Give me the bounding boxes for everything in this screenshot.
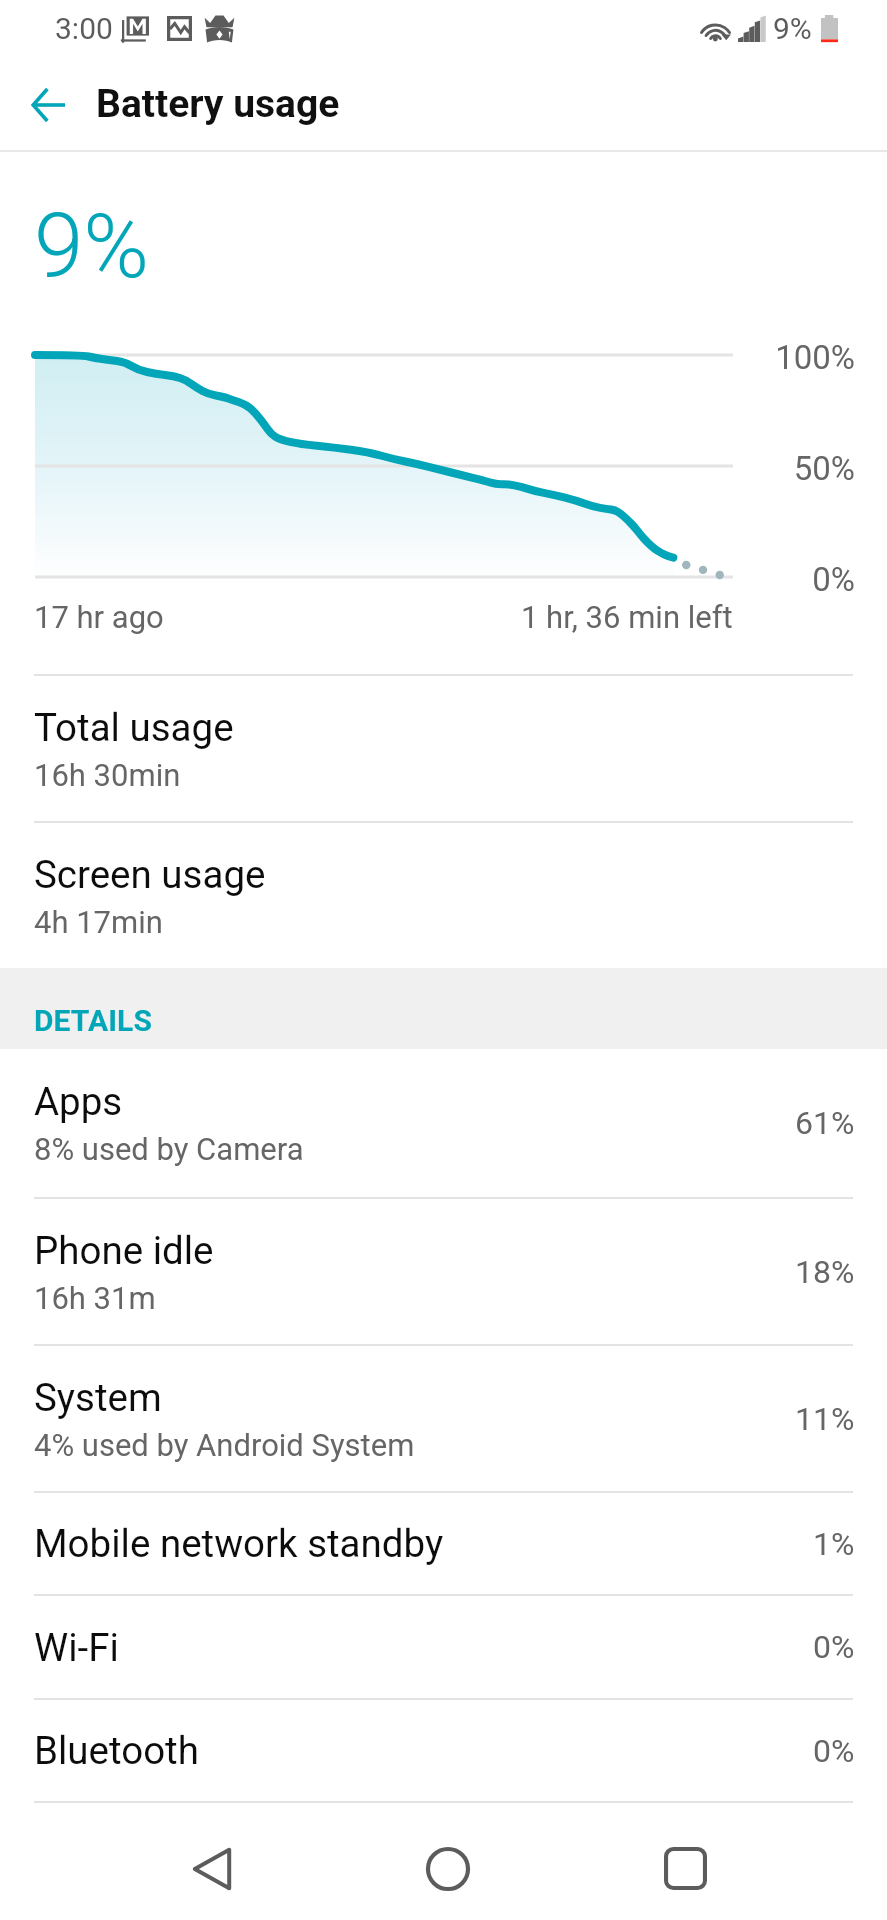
staticText: 16h 30min xyxy=(34,757,181,793)
staticText: 1% xyxy=(813,1525,855,1563)
staticText: 3:00 xyxy=(55,11,113,46)
staticText: Apps xyxy=(34,1079,123,1124)
button[interactable]: Recent apps xyxy=(626,1803,744,1920)
button[interactable]: Screen usage xyxy=(0,823,887,968)
staticText: 0% xyxy=(813,1732,855,1770)
staticText: Bluetooth xyxy=(34,1728,199,1773)
button[interactable]: Bluetooth xyxy=(0,1700,887,1801)
staticText: 8% used by Camera xyxy=(34,1131,304,1167)
button[interactable]: Phone idle xyxy=(0,1199,887,1344)
staticText: 0% xyxy=(813,1628,855,1666)
staticText: 0% xyxy=(0,560,855,599)
button[interactable]: Mobile network standby xyxy=(0,1493,887,1594)
staticText: Total usage xyxy=(34,705,234,750)
staticText: 61% xyxy=(795,1104,855,1142)
staticText: Screen usage xyxy=(34,852,266,897)
staticText: Battery usage xyxy=(96,81,340,127)
button[interactable]: Apps xyxy=(0,1049,887,1197)
staticText: 16h 31m xyxy=(34,1280,156,1316)
staticText: 9% xyxy=(34,194,150,298)
staticText: 50% xyxy=(0,449,855,488)
button[interactable]: System xyxy=(0,1346,887,1491)
button[interactable]: Back xyxy=(153,1803,271,1920)
staticText: Phone idle xyxy=(34,1228,214,1273)
staticText: 1 hr, 36 min left xyxy=(521,599,733,635)
button[interactable]: Navigate up xyxy=(0,58,96,152)
staticText: System xyxy=(34,1375,162,1420)
staticText: 100% xyxy=(0,338,855,377)
button[interactable]: Wi-Fi xyxy=(0,1596,887,1698)
staticText: 18% xyxy=(795,1253,855,1291)
button[interactable]: Home xyxy=(389,1803,507,1920)
staticText: Wi-Fi xyxy=(34,1625,119,1670)
staticText: Mobile network standby xyxy=(34,1521,444,1566)
staticText: 11% xyxy=(795,1400,855,1438)
staticText: DETAILS xyxy=(34,1003,153,1038)
staticText: 4h 17min xyxy=(34,904,163,940)
staticText: 9% xyxy=(773,11,812,46)
button[interactable]: Total usage xyxy=(0,676,887,821)
staticText: 4% used by Android System xyxy=(34,1427,415,1463)
staticText: 17 hr ago xyxy=(34,599,164,635)
